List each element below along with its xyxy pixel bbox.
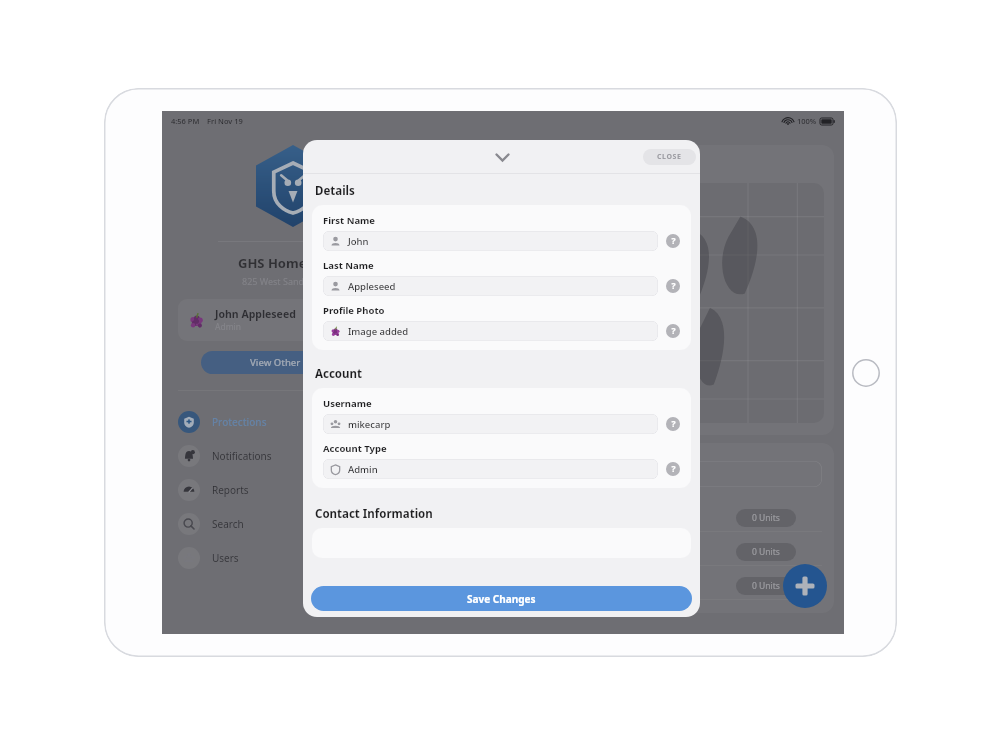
staticText: Notifications [212,449,272,463]
staticText: Image added [348,325,409,338]
button[interactable]: Help about First Name [666,234,680,248]
button[interactable]: Image added [323,321,658,341]
staticText: ? [671,325,676,337]
staticText: Username [323,397,372,410]
button[interactable]: Home [852,359,880,387]
staticText: mikecarp [348,418,391,431]
button[interactable]: John [323,231,658,251]
button[interactable]: Protections [178,405,408,439]
staticText: Appleseed [348,280,396,293]
staticText: 100% [797,116,817,126]
staticText: View Other Dealers [250,356,338,369]
staticText: John Appleseed [215,307,296,321]
button[interactable]: Collapse [487,142,517,172]
button[interactable]: John Appleseed [178,299,408,341]
staticText: McKinney [532,267,579,281]
button[interactable]: mikecarp [323,414,658,434]
staticText: Plano [468,347,495,361]
staticText: 4:56 PM [171,116,200,126]
staticText: Admin [215,321,242,333]
staticText: ? [671,280,676,292]
staticText: 0 Units [752,580,780,592]
staticText: Account [315,366,362,382]
staticText: Users [212,551,239,565]
staticText: 825 West Sandy Lake Rd [242,275,345,287]
staticText: Fri Nov 19 [207,116,243,126]
staticText: Princeton [596,273,637,285]
staticText: CLOSE [657,152,682,162]
staticText: Details [315,183,355,199]
staticText: Today at 3:16pm [445,602,515,614]
staticText: Profile Photo [323,304,385,317]
button[interactable]: View Other Dealers [201,351,386,374]
staticText: ? [671,418,676,430]
button[interactable]: Admin [323,459,658,479]
staticText: 0 Units [752,512,780,524]
button[interactable]: CLOSE [643,149,696,165]
button[interactable]: Help about Last Name [666,279,680,293]
button[interactable]: Save Changes [311,586,692,611]
button[interactable]: Reports [178,473,408,507]
staticText: ? [671,235,676,247]
staticText: Reports [212,483,249,497]
staticText: Version 2.0.0 Build 41 [312,578,398,590]
staticText: John [348,235,369,248]
staticText: ? [671,463,676,475]
button[interactable]: Help about Username [666,417,680,431]
staticText: 0 Units [752,546,780,558]
button[interactable]: Help about Profile Photo [666,324,680,338]
staticText: GHS Home Office [238,254,349,272]
button[interactable]: Notifications [178,439,408,473]
staticText: Admin [348,463,378,476]
button[interactable]: Users [178,541,408,575]
button[interactable]: Search [178,507,408,541]
staticText: Save Changes [467,592,536,606]
staticText: First Name [323,214,376,227]
button[interactable]: Add [783,564,827,608]
staticText: Contact Information [315,506,433,522]
button[interactable]: Help about Account Type [666,462,680,476]
staticText: Protections [212,415,267,429]
staticText: Last Name [323,259,374,272]
staticText: Account Type [323,442,387,455]
button[interactable]: Appleseed [323,276,658,296]
staticText: Search [212,517,244,531]
